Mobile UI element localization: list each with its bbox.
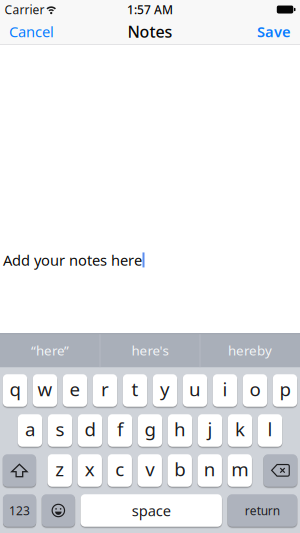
staticText: n xyxy=(204,457,216,481)
staticText: Carrier xyxy=(4,1,44,17)
button[interactable]: Save xyxy=(257,22,291,41)
button[interactable]: “here” xyxy=(0,333,100,367)
staticText: x xyxy=(85,457,95,481)
button[interactable]: d xyxy=(78,414,102,447)
button[interactable]: g xyxy=(138,414,162,447)
staticText: space xyxy=(132,501,171,520)
staticText: 123 xyxy=(9,502,30,518)
staticText: l xyxy=(267,417,272,441)
button[interactable]: s xyxy=(48,414,72,447)
button[interactable]: y xyxy=(153,374,177,407)
staticText: t xyxy=(131,377,138,401)
staticText: d xyxy=(84,417,95,441)
staticText: f xyxy=(117,417,123,441)
staticText: i xyxy=(222,377,227,401)
staticText: u xyxy=(189,377,201,401)
staticText: hereby xyxy=(228,341,272,359)
button[interactable]: o xyxy=(243,374,267,407)
staticText: Add your notes here xyxy=(3,250,142,270)
button[interactable]: v xyxy=(138,454,162,487)
staticText: Notes xyxy=(127,21,172,42)
button[interactable]: h xyxy=(168,414,192,447)
staticText: Save xyxy=(257,22,291,41)
staticText: s xyxy=(55,417,64,441)
staticText: return xyxy=(245,502,280,518)
staticText: e xyxy=(69,377,80,401)
staticText: z xyxy=(55,457,64,481)
staticText: m xyxy=(231,457,248,481)
button[interactable]: return xyxy=(228,494,297,527)
button[interactable]: w xyxy=(33,374,57,407)
staticText: k xyxy=(235,417,245,441)
button[interactable]: i xyxy=(213,374,237,407)
button[interactable]: Delete xyxy=(263,454,297,487)
button[interactable]: k xyxy=(228,414,252,447)
staticText: j xyxy=(207,417,212,441)
staticText: h xyxy=(174,417,186,441)
button[interactable]: q xyxy=(3,374,27,407)
button[interactable]: 123 xyxy=(3,494,36,527)
staticText: g xyxy=(144,417,155,441)
button[interactable]: r xyxy=(93,374,117,407)
button[interactable]: u xyxy=(183,374,207,407)
staticText: here's xyxy=(131,341,168,359)
button[interactable]: Emoji xyxy=(42,494,75,527)
button[interactable]: a xyxy=(18,414,42,447)
button[interactable]: n xyxy=(198,454,222,487)
button[interactable]: b xyxy=(168,454,192,487)
staticText: c xyxy=(115,457,124,481)
button[interactable]: l xyxy=(258,414,282,447)
staticText: r xyxy=(101,377,109,401)
button[interactable]: hereby xyxy=(200,333,300,367)
button[interactable]: here's xyxy=(100,333,200,367)
staticText: a xyxy=(25,417,35,441)
staticText: w xyxy=(37,377,52,401)
button[interactable]: c xyxy=(108,454,132,487)
button[interactable]: space xyxy=(80,494,222,527)
button[interactable]: f xyxy=(108,414,132,447)
staticText: o xyxy=(249,377,260,401)
button[interactable]: j xyxy=(198,414,222,447)
staticText: 1:57 AM xyxy=(127,1,173,17)
staticText: b xyxy=(174,457,185,481)
staticText: “here” xyxy=(31,341,69,359)
button[interactable]: Shift xyxy=(3,454,36,487)
button[interactable]: Cancel xyxy=(9,22,54,41)
button[interactable]: p xyxy=(273,374,297,407)
staticText: q xyxy=(9,377,20,401)
button[interactable]: z xyxy=(48,454,72,487)
button[interactable]: t xyxy=(123,374,147,407)
staticText: Cancel xyxy=(9,22,54,41)
staticText: y xyxy=(160,377,170,401)
staticText: p xyxy=(279,377,290,401)
button[interactable]: x xyxy=(78,454,102,487)
button[interactable]: e xyxy=(63,374,87,407)
staticText: v xyxy=(145,457,154,481)
button[interactable]: m xyxy=(228,454,252,487)
